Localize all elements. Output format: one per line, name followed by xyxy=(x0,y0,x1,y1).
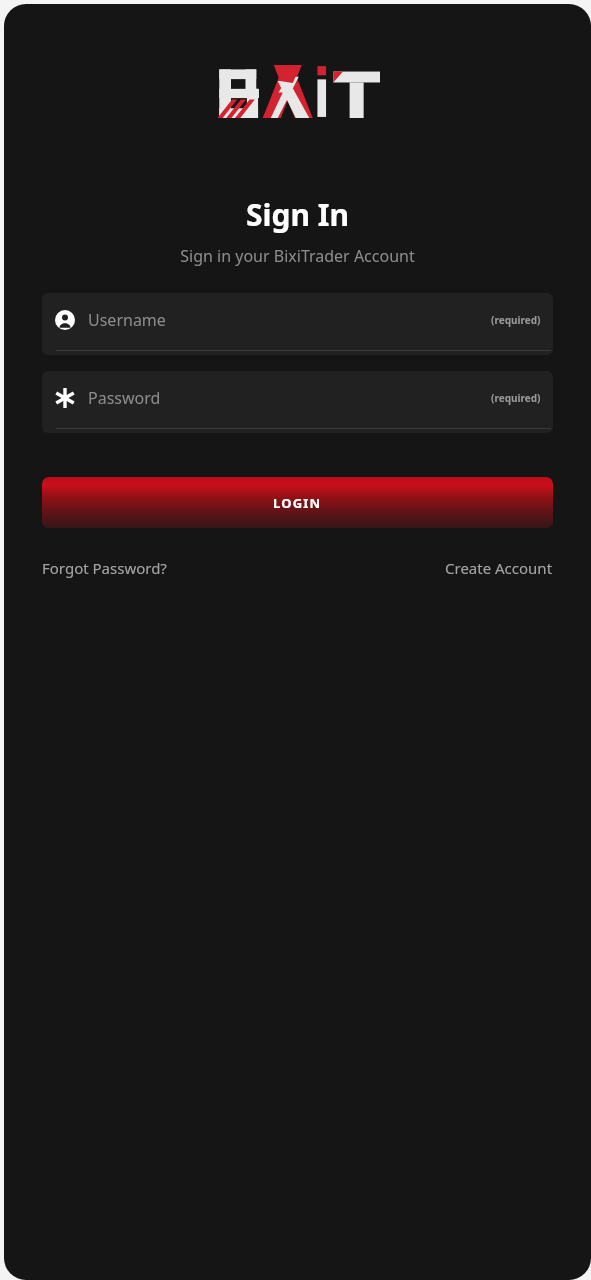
button[interactable]: Password xyxy=(42,371,553,433)
button[interactable]: Username xyxy=(42,293,553,355)
staticText: Forgot Password? xyxy=(42,558,167,578)
button[interactable]: Create Account xyxy=(445,554,553,582)
button[interactable]: LOGIN xyxy=(42,477,553,528)
staticText: Sign in your BixiTrader Account xyxy=(4,245,591,267)
staticText: (required) xyxy=(491,313,541,327)
staticText: Password xyxy=(88,387,491,409)
staticText: Create Account xyxy=(445,558,553,578)
staticText: Sign In xyxy=(4,194,591,235)
staticText: LOGIN xyxy=(273,494,322,512)
staticText: Username xyxy=(88,309,491,331)
button[interactable]: Forgot Password? xyxy=(42,554,167,582)
staticText: (required) xyxy=(491,391,541,405)
